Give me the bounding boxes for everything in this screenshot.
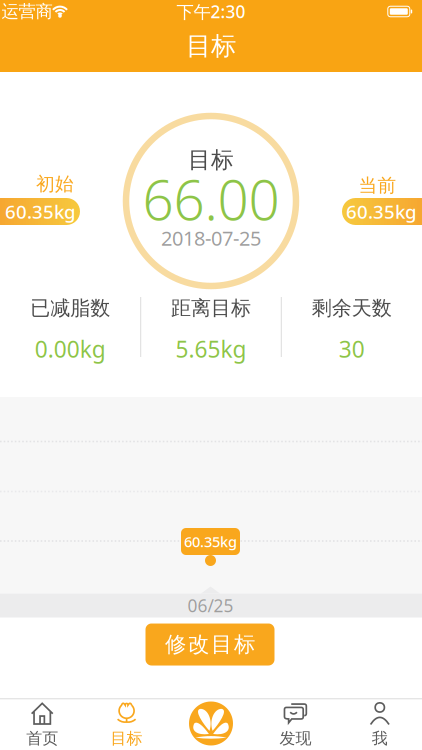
button[interactable]: 目标	[85, 702, 169, 748]
button[interactable]: 修改目标	[145, 623, 274, 665]
staticText: 距离目标	[171, 296, 251, 320]
button[interactable]: 记录	[189, 701, 233, 745]
staticText: 60.35kg	[346, 199, 417, 224]
staticText: 0.00kg	[35, 334, 106, 364]
staticText: 当前	[358, 174, 396, 197]
staticText: 30	[339, 334, 365, 364]
staticText: 66.00	[142, 163, 279, 235]
button[interactable]: 我	[338, 702, 422, 748]
button[interactable]: 初始 60.35kg	[0, 198, 80, 225]
staticText: 5.65kg	[175, 334, 246, 364]
staticText: 首页	[26, 729, 58, 748]
staticText: 06/25	[187, 594, 233, 617]
staticText: 发现	[279, 729, 311, 748]
staticText: 运营商	[1, 1, 52, 22]
staticText: 60.35kg	[184, 532, 237, 551]
staticText: 我	[372, 729, 388, 748]
staticText: 已减脂数	[30, 296, 110, 320]
staticText: 60.35kg	[5, 199, 76, 224]
staticText: 初始	[36, 172, 74, 195]
button[interactable]: 发现	[253, 702, 337, 748]
button[interactable]: 首页	[0, 702, 84, 748]
staticText: 目标	[111, 729, 143, 748]
staticText: 目标	[186, 30, 236, 61]
staticText: 2018-07-25	[161, 225, 261, 251]
staticText: 目标	[188, 146, 234, 174]
staticText: 下午2:30	[176, 0, 245, 23]
staticText: 剩余天数	[312, 296, 392, 320]
staticText: 修改目标	[165, 631, 255, 658]
button[interactable]: 当前 60.35kg	[342, 198, 422, 225]
